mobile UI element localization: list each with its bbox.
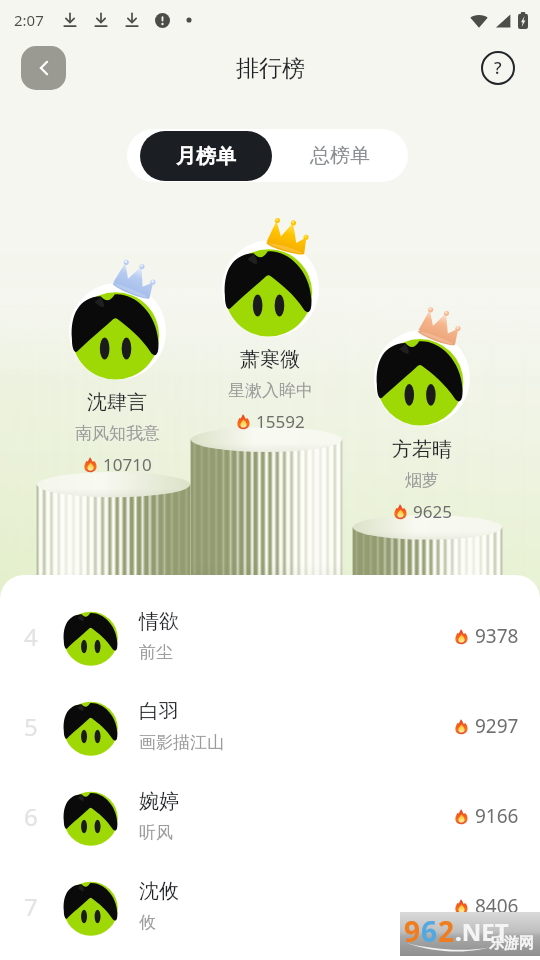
staticText: 前尘: [139, 642, 173, 663]
staticText: 方若晴: [392, 437, 452, 462]
staticText: 乐游网: [489, 934, 534, 953]
staticText: 4: [24, 620, 38, 653]
staticText: 5: [24, 710, 38, 743]
staticText: 8406: [475, 893, 519, 919]
staticText: 15592: [256, 410, 305, 433]
staticText: 2: [438, 912, 455, 950]
button[interactable]: 月榜单: [140, 131, 272, 181]
staticText: 6: [421, 912, 438, 950]
staticText: 沈肆言: [87, 390, 147, 415]
staticText: 南风知我意: [75, 423, 160, 444]
staticText: 烟萝: [405, 470, 439, 491]
button[interactable]: 7: [0, 861, 540, 951]
button[interactable]: 4: [0, 591, 540, 681]
staticText: .NET: [455, 915, 509, 948]
staticText: 画影描江山: [139, 732, 224, 753]
staticText: ?: [494, 56, 502, 79]
button[interactable]: 总榜单: [272, 129, 408, 182]
staticText: 星漱入眸中: [228, 380, 313, 401]
staticText: 婉婷: [139, 789, 179, 814]
button[interactable]: Back: [21, 46, 66, 90]
staticText: 听风: [139, 822, 173, 843]
button[interactable]: [69, 283, 166, 380]
staticText: 9166: [475, 803, 519, 829]
staticText: 2:07: [14, 10, 44, 30]
button[interactable]: [374, 330, 470, 426]
staticText: 9378: [475, 623, 519, 649]
staticText: 攸: [139, 912, 156, 933]
staticText: 6: [24, 800, 38, 833]
button[interactable]: [222, 240, 319, 337]
staticText: 排行榜: [236, 54, 305, 83]
staticText: 月榜单: [176, 144, 236, 169]
staticText: 9625: [413, 500, 452, 523]
staticText: 7: [24, 890, 38, 923]
button[interactable]: 5: [0, 681, 540, 771]
staticText: 9: [404, 912, 421, 950]
staticText: 白羽: [139, 699, 179, 724]
staticText: 总榜单: [310, 143, 370, 168]
staticText: 10710: [103, 453, 152, 476]
staticText: 9297: [475, 713, 519, 739]
button[interactable]: Help: [480, 50, 516, 86]
staticText: 萧寒微: [240, 347, 300, 372]
staticText: 情欲: [139, 609, 179, 634]
button[interactable]: 6: [0, 771, 540, 861]
staticText: 沈攸: [139, 879, 179, 904]
